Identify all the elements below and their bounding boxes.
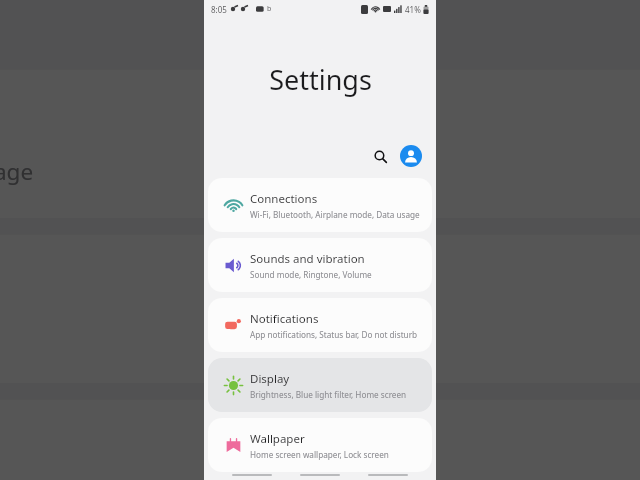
button[interactable]: Navigation button [232, 469, 272, 480]
staticText: Wi-Fi, Bluetooth, Airplane mode, Data us… [250, 209, 420, 220]
button[interactable]: Navigation button [300, 469, 340, 480]
staticText: App notifications, Status bar, Do not di… [250, 329, 418, 340]
button[interactable]: Notifications [0, 399, 640, 480]
button[interactable]: Connections [0, 69, 640, 218]
staticText: 8:05 [211, 4, 227, 15]
staticText: Display [250, 371, 290, 387]
staticText: Connections [250, 191, 318, 207]
button[interactable]: Wallpaper [208, 418, 432, 472]
staticText: Brightness, Blue light filter, Home scre… [250, 389, 407, 400]
staticText: Sounds and vibration [250, 251, 365, 267]
button[interactable]: Navigation button [368, 469, 408, 480]
button[interactable]: Sounds and vibration [208, 238, 432, 292]
staticText: Wallpaper [250, 431, 305, 447]
button[interactable]: Sounds and vibration [0, 234, 640, 383]
staticText: b [267, 4, 272, 14]
button[interactable]: Display [208, 358, 432, 412]
staticText: Settings [269, 61, 372, 98]
staticText: Wi-Fi, Bluetooth, Airplane mode, Data us… [0, 155, 34, 185]
staticText: 41% [405, 4, 421, 15]
button[interactable]: Connections [208, 178, 432, 232]
button[interactable]: Account [400, 145, 422, 167]
staticText: Notifications [250, 311, 319, 327]
button[interactable]: Notifications [208, 298, 432, 352]
staticText: Home screen wallpaper, Lock screen [250, 449, 389, 460]
staticText: Sound mode, Ringtone, Volume [250, 269, 372, 280]
button[interactable]: Search [367, 143, 393, 169]
